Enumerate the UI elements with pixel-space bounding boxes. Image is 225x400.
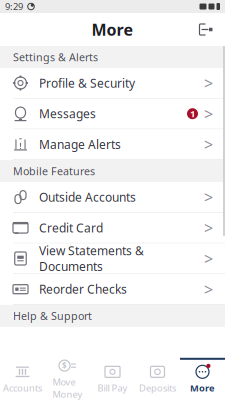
staticText: Outside Accounts	[39, 189, 136, 205]
button[interactable]: Messages	[0, 99, 225, 129]
staticText: Accounts	[3, 382, 42, 394]
staticText: Bill Pay	[97, 382, 127, 394]
staticText: >	[204, 279, 213, 300]
staticText: >	[204, 217, 213, 238]
staticText: Settings & Alerts	[13, 50, 98, 64]
button[interactable]: Profile & Security	[0, 68, 225, 99]
staticText: Mobile Features	[13, 164, 95, 178]
staticText: >	[204, 186, 213, 208]
staticText: More	[190, 382, 215, 394]
staticText: Move Money	[52, 376, 82, 400]
staticText: Messages	[39, 106, 96, 122]
staticText: More	[91, 19, 133, 40]
staticText: View Statements & Documents	[39, 243, 144, 274]
button[interactable]: Reorder Checks	[0, 274, 225, 305]
button[interactable]: Credit Card	[0, 213, 225, 243]
button[interactable]: Outside Accounts	[0, 182, 225, 213]
button[interactable]: View Statements & Documents	[0, 243, 225, 274]
button[interactable]: $	[45, 360, 90, 400]
staticText: Credit Card	[39, 220, 103, 236]
staticText: Manage Alerts	[39, 136, 121, 152]
button[interactable]: Deposits	[135, 360, 180, 400]
staticText: >	[204, 103, 213, 124]
staticText: Help & Support	[13, 309, 92, 323]
button[interactable]: Bill Pay	[90, 360, 135, 400]
staticText: >	[204, 134, 213, 155]
staticText: Deposits	[139, 382, 176, 394]
button[interactable]: More	[180, 360, 225, 400]
button[interactable]: Manage Alerts	[0, 129, 225, 160]
staticText: 1	[190, 107, 195, 120]
button[interactable]: Sign out	[191, 16, 217, 42]
staticText: 9:29	[5, 0, 23, 13]
staticText: Reorder Checks	[39, 281, 127, 297]
staticText: $	[62, 360, 67, 371]
staticText: Profile & Security	[39, 75, 135, 91]
staticText: >	[204, 72, 213, 94]
staticText: >	[204, 248, 213, 269]
button[interactable]: Accounts	[0, 360, 45, 400]
